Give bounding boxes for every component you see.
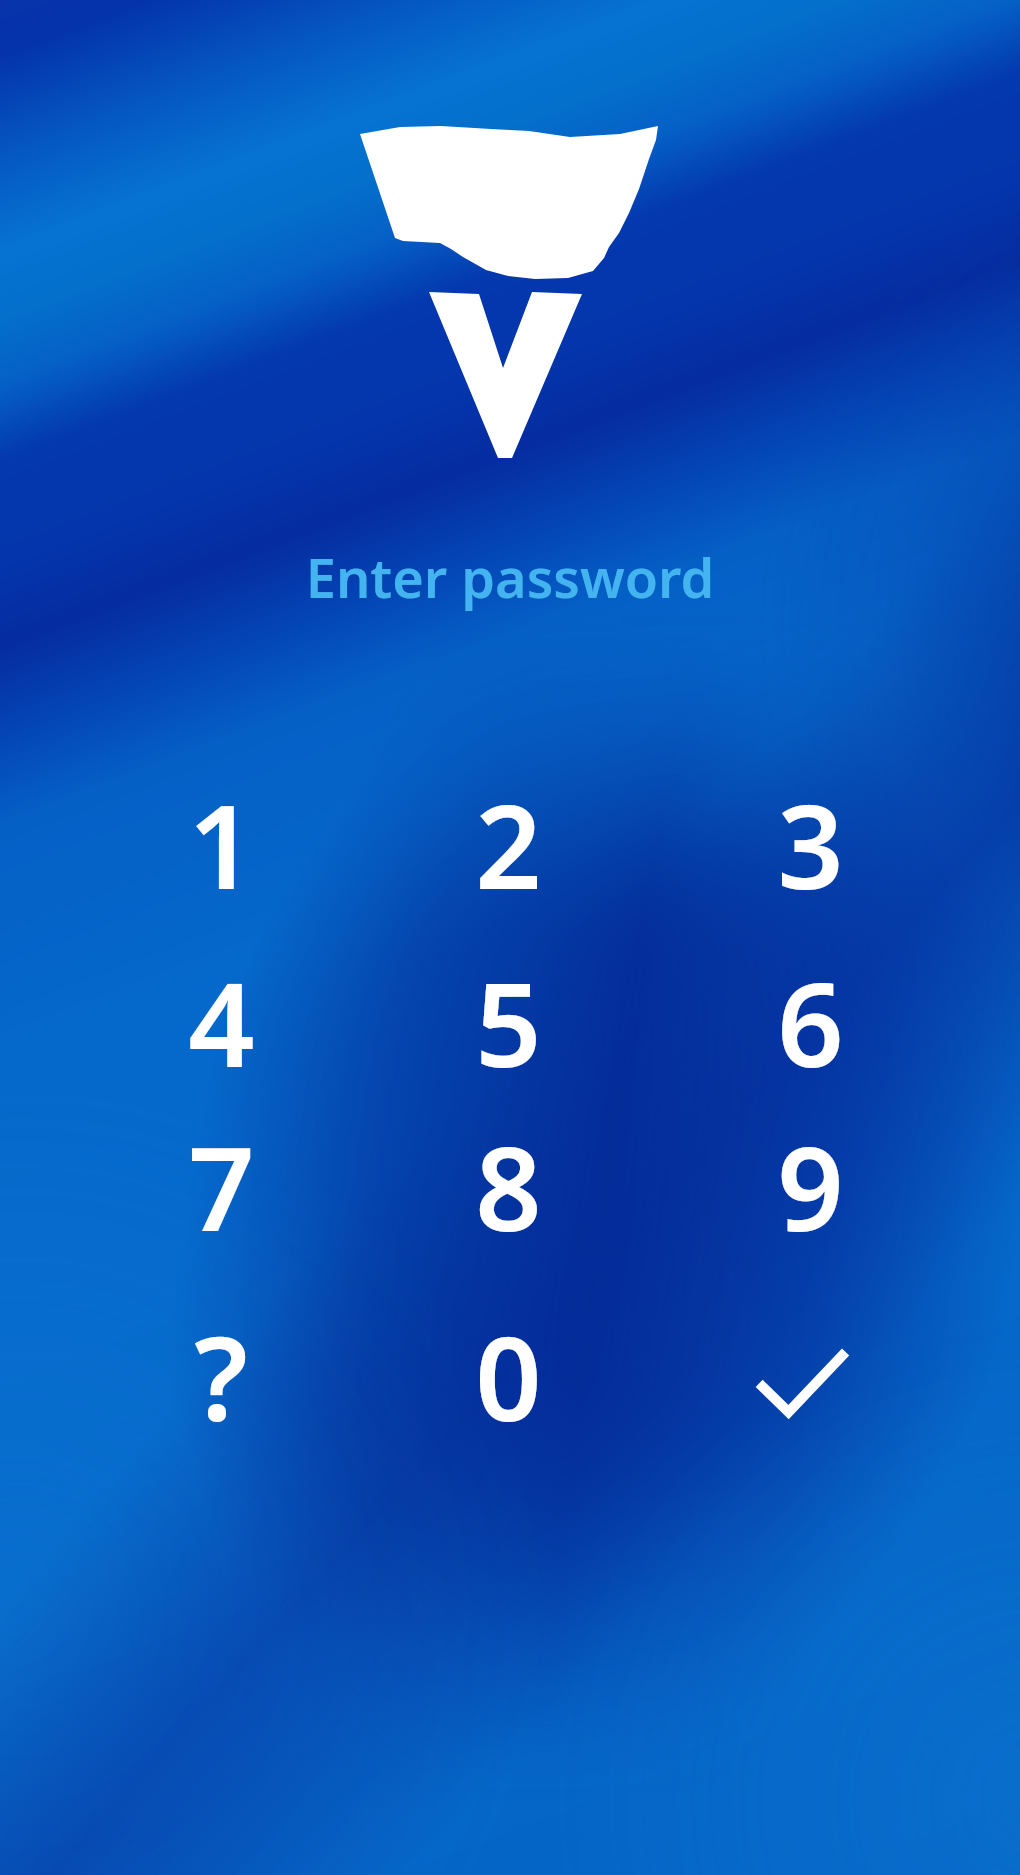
- staticText: 1: [188, 765, 255, 923]
- staticText: 3: [777, 765, 844, 923]
- button[interactable]: 1: [111, 764, 331, 924]
- button[interactable]: Confirm: [700, 1296, 920, 1456]
- staticText: 5: [475, 943, 542, 1101]
- staticText: 0: [475, 1297, 542, 1455]
- button[interactable]: 9: [700, 1106, 920, 1266]
- staticText: Enter password: [0, 540, 1020, 614]
- staticText: ?: [194, 1297, 248, 1455]
- button[interactable]: 4: [111, 942, 331, 1102]
- staticText: 8: [475, 1107, 542, 1265]
- staticText: 2: [475, 765, 542, 923]
- other: Confirm: [755, 1349, 847, 1415]
- staticText: 4: [188, 943, 255, 1101]
- staticText: 6: [777, 943, 844, 1101]
- button[interactable]: 6: [700, 942, 920, 1102]
- button[interactable]: 7: [111, 1106, 331, 1266]
- button[interactable]: 3: [700, 764, 920, 924]
- staticText: 9: [777, 1107, 844, 1265]
- button[interactable]: ?: [111, 1296, 331, 1456]
- button[interactable]: 0: [398, 1296, 618, 1456]
- button[interactable]: 2: [398, 764, 618, 924]
- button[interactable]: 8: [398, 1106, 618, 1266]
- staticText: 7: [188, 1107, 255, 1265]
- button[interactable]: 5: [398, 942, 618, 1102]
